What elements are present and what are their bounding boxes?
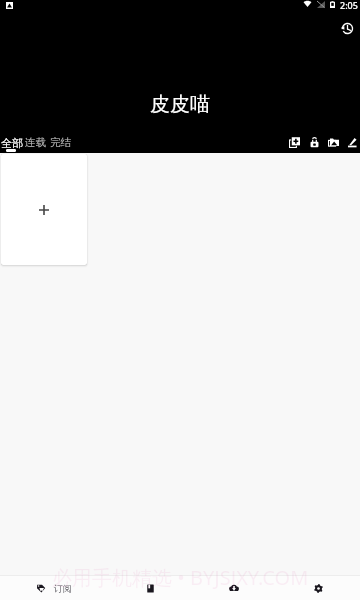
staticText: 皮皮喵 [150, 92, 210, 117]
button[interactable]: Edit [343, 131, 360, 153]
button[interactable]: Settings [276, 576, 360, 600]
button[interactable]: 全部 [1, 136, 23, 150]
staticText: 2:05 [340, 0, 358, 11]
button[interactable]: Folders [325, 131, 342, 153]
button[interactable]: 连载 [25, 136, 46, 149]
button[interactable]: Library [108, 576, 192, 600]
button[interactable]: Add book [1, 154, 87, 265]
button[interactable]: Downloads [192, 576, 276, 600]
button[interactable]: Private [306, 131, 323, 153]
staticText: 订阅 [54, 583, 72, 594]
button[interactable]: Add to library [286, 131, 303, 153]
button[interactable]: 完结 [50, 136, 71, 149]
button[interactable]: History [335, 16, 360, 41]
button[interactable]: 订阅 [0, 576, 108, 600]
staticText: 必用手机精选 • BYJSJXY.COM [52, 564, 309, 591]
